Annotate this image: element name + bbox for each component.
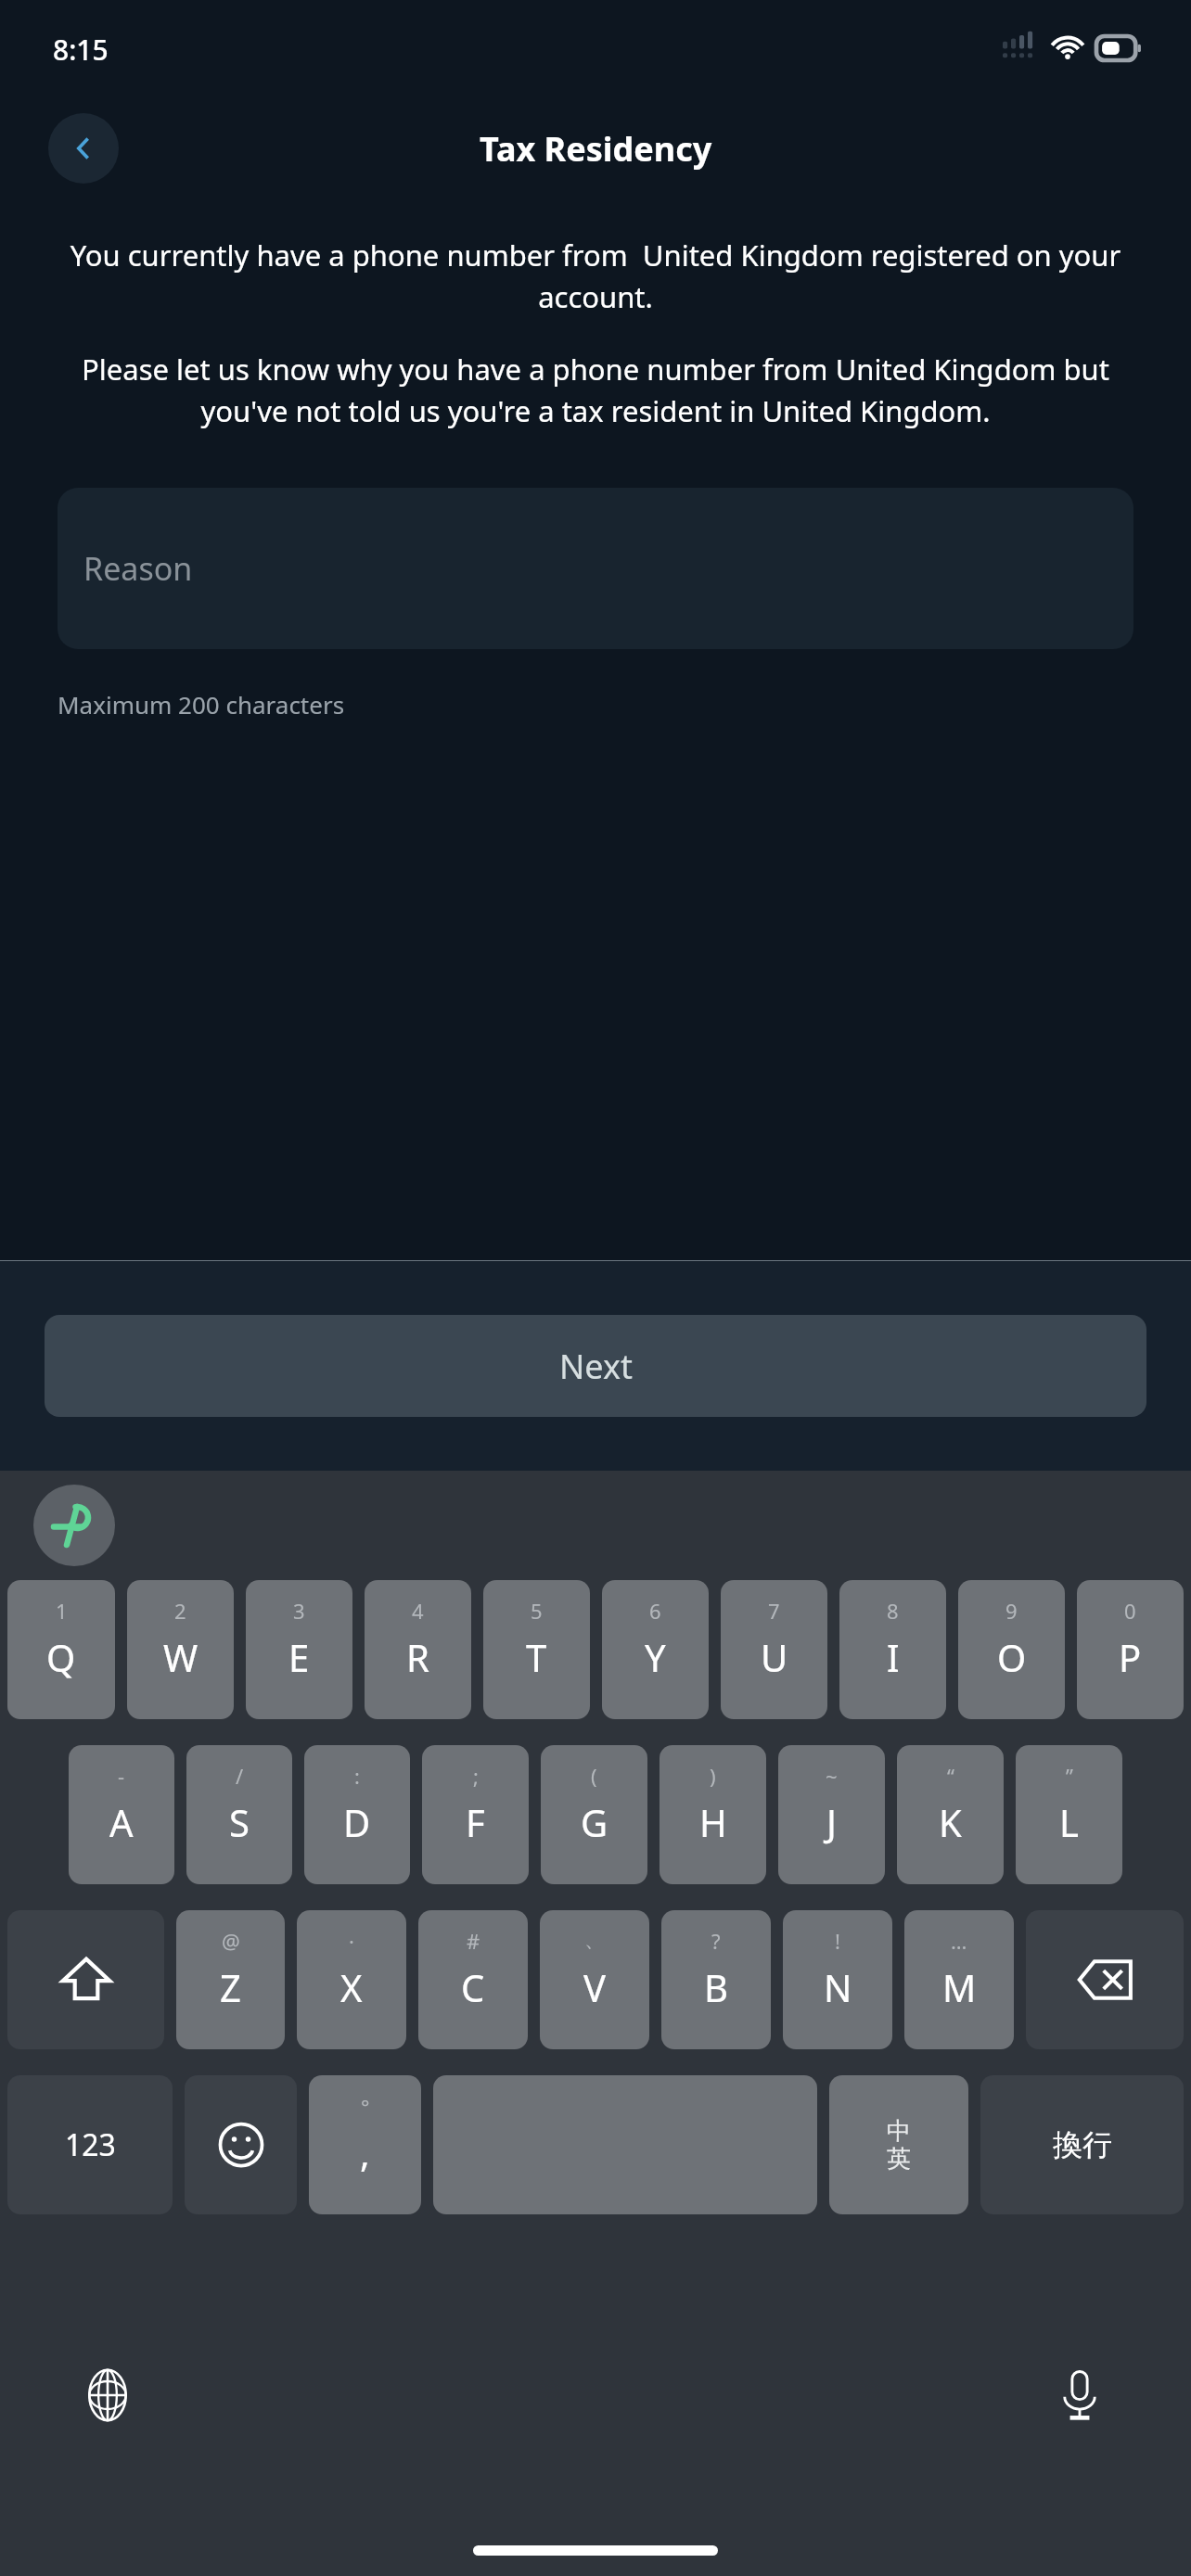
staticText: U (761, 1632, 788, 1682)
staticText: N (824, 1962, 852, 2012)
staticText: L (1059, 1797, 1079, 1847)
staticText: ) (710, 1762, 716, 1790)
button[interactable]: 6 (602, 1580, 709, 1719)
staticText: D (343, 1797, 371, 1847)
staticText: ° (361, 2092, 370, 2120)
staticText: , (360, 2127, 370, 2177)
staticText: O (997, 1632, 1027, 1682)
staticText: R (406, 1632, 429, 1682)
staticText: … (951, 1927, 967, 1955)
button[interactable]: ~ (778, 1745, 885, 1884)
staticText: 0 (1124, 1597, 1136, 1625)
button[interactable]: Backspace (1026, 1910, 1184, 2049)
button[interactable]: # (418, 1910, 528, 2049)
staticText: ( (591, 1762, 597, 1790)
button[interactable]: 1 (7, 1580, 115, 1719)
button[interactable]: ; (422, 1745, 529, 1884)
staticText: 換行 (1053, 2126, 1112, 2163)
staticText: T (526, 1632, 547, 1682)
staticText: ” (1066, 1762, 1073, 1790)
button[interactable]: · (297, 1910, 406, 2049)
button[interactable]: / (186, 1745, 292, 1884)
staticText: 7 (768, 1597, 780, 1625)
button[interactable]: Keyboard app (33, 1485, 115, 1566)
staticText: 4 (412, 1597, 424, 1625)
button[interactable]: Chinese English toggle (829, 2075, 968, 2214)
button[interactable]: 2 (127, 1580, 234, 1719)
staticText: “ (947, 1762, 954, 1790)
staticText: M (942, 1962, 977, 2012)
staticText: 5 (531, 1597, 543, 1625)
staticText: B (704, 1962, 728, 2012)
staticText: J (826, 1797, 837, 1847)
staticText: Maximum 200 characters (58, 688, 345, 721)
staticText: ? (711, 1927, 721, 1955)
staticText: W (163, 1632, 198, 1682)
staticText: 1 (56, 1597, 68, 1625)
staticText: Next (559, 1344, 633, 1389)
button[interactable]: 123 (7, 2075, 173, 2214)
button[interactable]: ! (783, 1910, 892, 2049)
button[interactable]: Back (48, 113, 119, 184)
button[interactable]: ) (660, 1745, 766, 1884)
button[interactable]: Shift (7, 1910, 164, 2049)
staticText: F (466, 1797, 485, 1847)
staticText: - (118, 1762, 125, 1790)
staticText: 8:15 (53, 31, 109, 69)
button[interactable]: Next (45, 1315, 1146, 1417)
staticText: 8 (887, 1597, 899, 1625)
staticText: Z (220, 1962, 241, 2012)
button[interactable]: 8 (839, 1580, 946, 1719)
staticText: K (939, 1797, 962, 1847)
staticText: G (581, 1797, 608, 1847)
staticText: H (699, 1797, 727, 1847)
staticText: C (461, 1962, 485, 2012)
staticText: # (467, 1927, 480, 1955)
button[interactable]: 3 (246, 1580, 352, 1719)
button[interactable]: : (304, 1745, 410, 1884)
button[interactable]: Space (433, 2075, 817, 2214)
button[interactable]: “ (897, 1745, 1004, 1884)
button[interactable]: Voice input (1044, 2360, 1115, 2430)
button[interactable]: ° (309, 2075, 421, 2214)
staticText: P (1119, 1632, 1142, 1682)
staticText: 9 (1005, 1597, 1018, 1625)
staticText: 2 (174, 1597, 186, 1625)
staticText: V (583, 1962, 606, 2012)
button[interactable]: ( (541, 1745, 647, 1884)
staticText: 3 (293, 1597, 305, 1625)
button[interactable]: ? (661, 1910, 771, 2049)
staticText: A (109, 1797, 134, 1847)
staticText: E (288, 1632, 310, 1682)
staticText: 123 (65, 2124, 116, 2165)
button[interactable]: 4 (365, 1580, 471, 1719)
button[interactable]: 7 (721, 1580, 827, 1719)
button[interactable]: … (904, 1910, 1014, 2049)
button[interactable]: 0 (1077, 1580, 1184, 1719)
button[interactable]: - (69, 1745, 174, 1884)
staticText: Tax Residency (480, 126, 712, 172)
staticText: You currently have a phone number from U… (58, 236, 1133, 316)
staticText: Y (645, 1632, 666, 1682)
button[interactable]: Reason (58, 488, 1133, 649)
button[interactable]: 換行 (980, 2075, 1184, 2214)
staticText: I (887, 1632, 900, 1682)
staticText: S (229, 1797, 250, 1847)
button[interactable]: Switch keyboard language (72, 2360, 143, 2430)
staticText: : (354, 1762, 360, 1790)
staticText: Please let us know why you have a phone … (58, 350, 1133, 430)
button[interactable]: Emoji (185, 2075, 297, 2214)
staticText: @ (222, 1927, 240, 1955)
staticText: Reason (83, 547, 193, 590)
button[interactable]: @ (176, 1910, 285, 2049)
staticText: Q (46, 1632, 76, 1682)
staticText: X (340, 1962, 363, 2012)
button[interactable]: 5 (483, 1580, 590, 1719)
staticText: ; (473, 1762, 479, 1790)
staticText: · (349, 1927, 354, 1955)
button[interactable]: 9 (958, 1580, 1065, 1719)
button[interactable]: 、 (540, 1910, 649, 2049)
staticText: / (236, 1762, 244, 1790)
staticText: ! (835, 1927, 840, 1955)
button[interactable]: ” (1016, 1745, 1122, 1884)
